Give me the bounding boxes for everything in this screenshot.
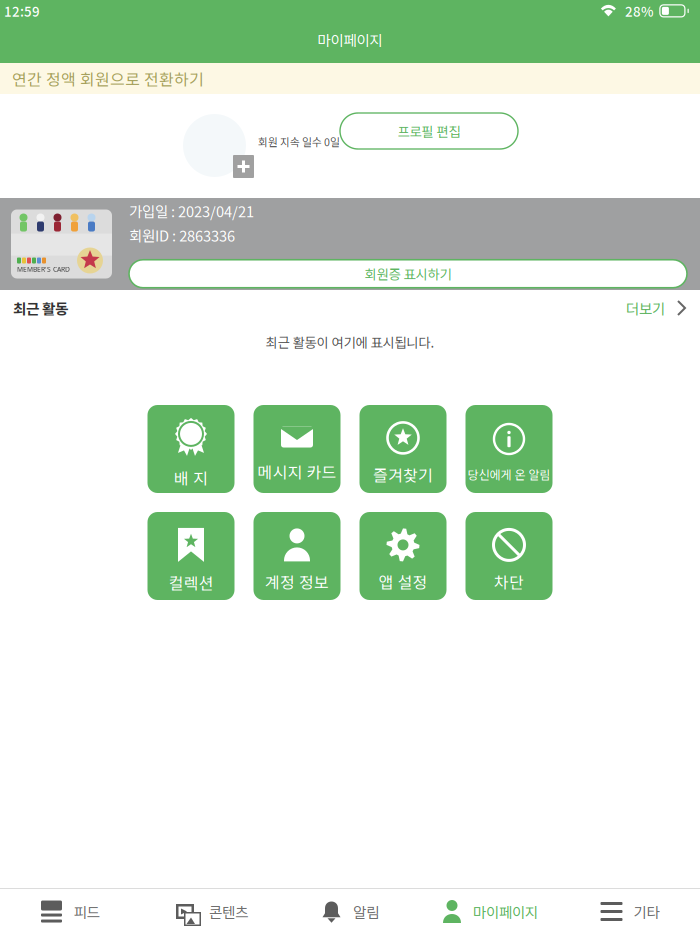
staticText: 즐겨찾기 xyxy=(373,463,433,486)
staticText: 연간 정액 회원으로 전환하기 xyxy=(12,67,204,90)
button[interactable]: 마이페이지 xyxy=(420,889,560,934)
button[interactable]: 계정 정보 xyxy=(253,512,340,600)
staticText: 회원ID : 2863336 xyxy=(129,224,235,246)
button[interactable]: 당신에게 온 알림 xyxy=(465,405,552,493)
button[interactable]: 프로필 편집 xyxy=(340,113,518,149)
staticText: 배 지 xyxy=(174,466,208,489)
button[interactable]: 컬렉션 xyxy=(147,512,234,600)
staticText: 차단 xyxy=(494,570,524,593)
button[interactable]: 알림 xyxy=(280,889,420,934)
staticText: 회원 지속 일수 0일 xyxy=(258,134,340,149)
staticText: 계정 정보 xyxy=(265,570,329,593)
button[interactable]: 배 지 xyxy=(147,405,234,493)
button[interactable]: 차단 xyxy=(465,512,552,600)
staticText: 알림 xyxy=(353,901,379,922)
staticText: 앱 설정 xyxy=(378,570,427,593)
staticText: 메시지 카드 xyxy=(257,460,336,483)
staticText: 28% xyxy=(625,1,654,20)
staticText: 당신에게 온 알림 xyxy=(467,466,550,483)
staticText: 기타 xyxy=(633,901,659,922)
staticText: MEMBER'S CARD xyxy=(17,264,70,274)
staticText: 마이페이지 xyxy=(317,29,382,50)
staticText: 12:59 xyxy=(4,1,40,20)
staticText: 프로필 편집 xyxy=(397,121,460,141)
staticText: 최근 활동 xyxy=(13,297,68,319)
staticText: 콘텐츠 xyxy=(209,901,248,922)
staticText: 마이페이지 xyxy=(473,901,538,922)
staticText: 회원증 표시하기 xyxy=(364,264,451,283)
button[interactable]: 메시지 카드 xyxy=(253,405,340,493)
staticText: 최근 활동이 여기에 표시됩니다. xyxy=(265,332,434,352)
button[interactable]: 앱 설정 xyxy=(359,512,446,600)
staticText: 컬렉션 xyxy=(168,571,213,594)
button[interactable]: Add profile photo xyxy=(233,155,254,178)
button[interactable]: 연간 정액 회원으로 전환하기 xyxy=(0,63,700,94)
staticText: 더보기 xyxy=(626,297,665,319)
button[interactable]: 기타 xyxy=(560,889,700,934)
button[interactable]: 즐겨찾기 xyxy=(359,405,446,493)
staticText: 피드 xyxy=(73,901,99,922)
button[interactable]: 콘텐츠 xyxy=(140,889,280,934)
button[interactable]: 회원증 표시하기 xyxy=(129,260,687,288)
button[interactable]: 더보기 xyxy=(626,297,687,319)
staticText: 가입일 : 2023/04/21 xyxy=(129,200,254,221)
button[interactable]: 피드 xyxy=(0,889,140,934)
